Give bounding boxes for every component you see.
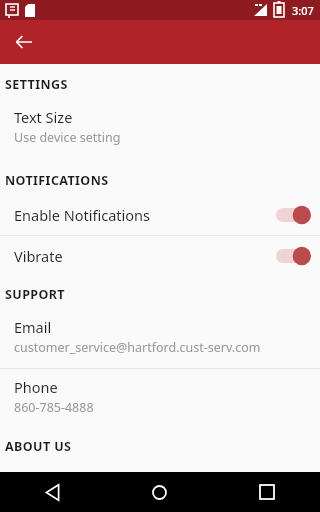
button[interactable]: Recent apps (213, 472, 320, 512)
staticText: Phone (14, 377, 58, 397)
button[interactable]: Back (8, 26, 40, 58)
staticText: 3:07 (292, 3, 314, 18)
button[interactable]: Email (0, 309, 320, 368)
staticText: Email (14, 317, 52, 337)
button[interactable]: Back (0, 472, 106, 512)
staticText: SUPPORT (5, 286, 320, 303)
staticText: customer_service@hartford.cust-serv.com (14, 339, 261, 356)
button[interactable]: Enable Notifications (0, 195, 320, 235)
button[interactable]: Phone (0, 369, 320, 428)
staticText: Vibrate (14, 246, 276, 266)
staticText: ABOUT US (5, 438, 320, 455)
staticText: Enable Notifications (14, 205, 276, 225)
staticText: Use device setting (14, 129, 121, 146)
staticText: NOTIFICATIONS (5, 172, 320, 189)
button[interactable]: Text Size (0, 99, 320, 158)
staticText: Text Size (14, 107, 73, 127)
button[interactable]: Home (106, 472, 213, 512)
button[interactable]: Vibrate (0, 236, 320, 276)
staticText: SETTINGS (5, 76, 320, 93)
staticText: 860-785-4888 (14, 399, 94, 416)
